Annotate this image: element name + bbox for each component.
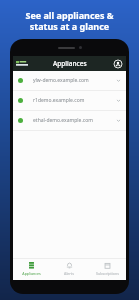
button[interactable]: ethal-demo.example.com [13,111,126,131]
button[interactable]: Alerts [50,258,88,280]
staticText: Appliances [22,271,41,276]
staticText: Subscriptions [96,271,119,276]
staticText: ylw-demo.example.com [33,77,116,84]
button[interactable]: Subscriptions [88,258,126,280]
staticText: See all appliances & status at a glance [6,9,133,33]
button[interactable]: Logo [16,61,28,66]
button[interactable]: r1demo.example.com [13,91,126,111]
staticText: Appliances [53,59,87,68]
staticText: Alerts [64,271,74,276]
button[interactable]: ylw-demo.example.com [13,71,126,91]
staticText: ethal-demo.example.com [33,117,116,124]
staticText: r1demo.example.com [33,97,116,104]
button[interactable]: Account [114,60,122,68]
button[interactable]: Appliances [13,258,50,280]
